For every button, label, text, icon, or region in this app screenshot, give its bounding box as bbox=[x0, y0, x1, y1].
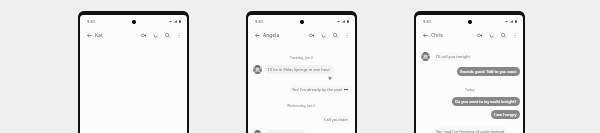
button[interactable]: Yes, and I'm thinking of sushi instead bbox=[433, 127, 508, 133]
staticText: Angela bbox=[263, 32, 280, 39]
staticText: Do you want to try sushi tonight? bbox=[455, 99, 517, 104]
staticText: 9:30 bbox=[87, 19, 95, 24]
button[interactable]: Video call bbox=[305, 29, 317, 41]
staticText: 9:30 bbox=[423, 19, 431, 24]
staticText: Sounds good. Talk to you soon bbox=[460, 69, 517, 74]
staticText: Wednesday, Jan 5 bbox=[287, 103, 316, 108]
button[interactable]: Video call bbox=[473, 29, 485, 41]
button[interactable]: I'll call you tonight bbox=[433, 52, 473, 61]
staticText: I am hungry bbox=[494, 112, 517, 117]
button[interactable]: Yes! I'm already by the pool 🕶 bbox=[289, 85, 352, 94]
staticText: Yes! I'm already by the pool 🕶 bbox=[292, 87, 349, 92]
button[interactable]: Call you later bbox=[321, 115, 352, 124]
staticText: Chris bbox=[431, 32, 443, 39]
button[interactable]: Sounds good. Talk to you soon bbox=[457, 67, 520, 76]
staticText: Tuesday, Jan 4 bbox=[290, 55, 313, 60]
staticText: I'll be in Palm Springs in one hour bbox=[268, 67, 331, 72]
button[interactable]: Call bbox=[485, 29, 497, 41]
button[interactable]: Back bbox=[85, 31, 94, 40]
button[interactable]: More options bbox=[173, 29, 185, 41]
staticText: Yes, and I'm thinking of sushi instead bbox=[436, 129, 505, 133]
button[interactable]: Video call bbox=[137, 29, 149, 41]
button[interactable]: More options bbox=[509, 29, 521, 41]
staticText: I'll call you tonight bbox=[436, 54, 470, 59]
button[interactable]: I am hungry bbox=[491, 110, 520, 119]
staticText: Kat bbox=[95, 32, 103, 39]
staticText: Today bbox=[465, 87, 475, 92]
button[interactable]: Call bbox=[149, 29, 161, 41]
button[interactable]: Back bbox=[253, 31, 262, 40]
button[interactable]: More options bbox=[341, 29, 353, 41]
button[interactable]: Search bbox=[161, 29, 173, 41]
button[interactable]: Call bbox=[317, 29, 329, 41]
button[interactable]: Back bbox=[421, 31, 430, 40]
button[interactable]: Do you want to try sushi tonight? bbox=[452, 97, 520, 106]
staticText: 9:30 bbox=[255, 19, 263, 24]
button[interactable]: Search bbox=[329, 29, 341, 41]
button[interactable]: Search bbox=[497, 29, 509, 41]
staticText: Call you later bbox=[324, 117, 349, 122]
button[interactable]: I'll be in Palm Springs in one hour bbox=[265, 65, 334, 74]
